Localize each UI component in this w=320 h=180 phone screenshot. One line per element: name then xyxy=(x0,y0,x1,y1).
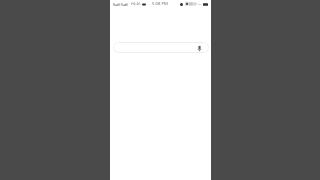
staticText: ٢٥.٥١ xyxy=(131,1,142,7)
staticText: ▣▤◎·— xyxy=(185,1,202,7)
staticText: 5:08 PM xyxy=(152,1,168,7)
button[interactable]: Voice search xyxy=(113,42,209,53)
button[interactable]: Voice search xyxy=(197,45,202,52)
